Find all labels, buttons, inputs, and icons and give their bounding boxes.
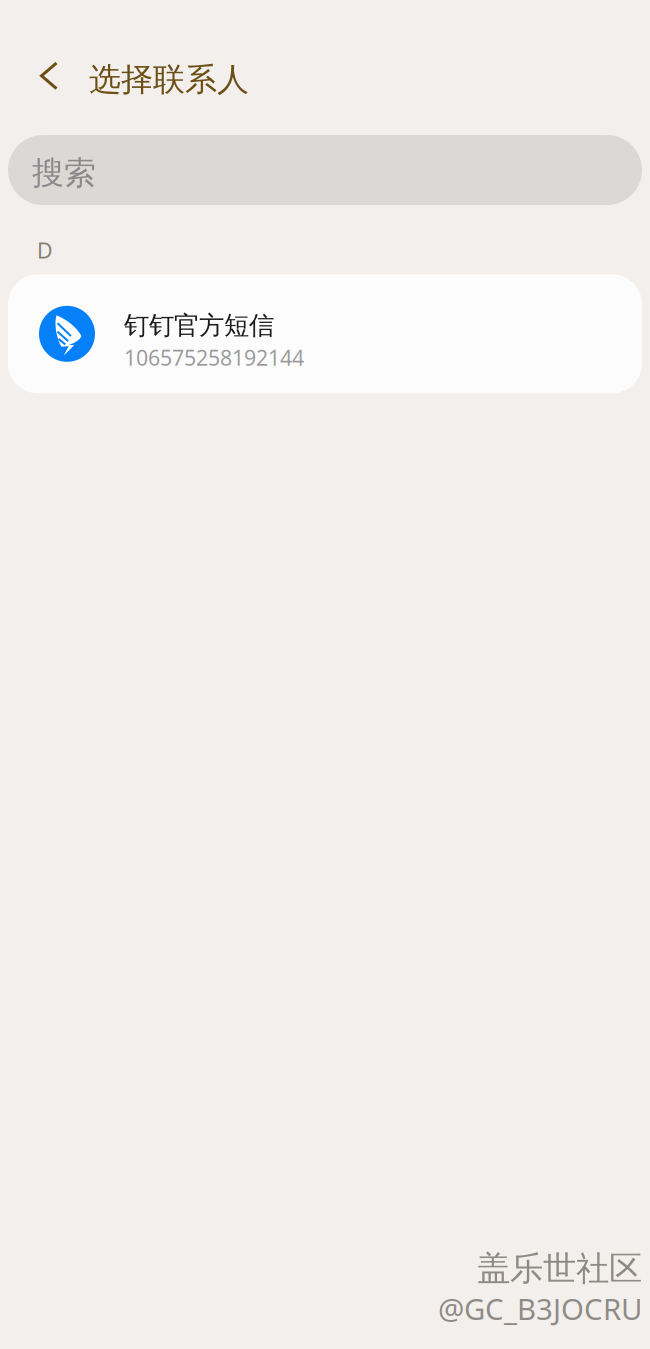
staticText: 搜索 bbox=[32, 153, 96, 193]
button[interactable]: 搜索 bbox=[8, 135, 642, 205]
staticText: 选择联系人 bbox=[89, 60, 249, 99]
staticText: D bbox=[37, 236, 53, 264]
staticText: 钉钉官方短信 bbox=[124, 310, 274, 341]
staticText: @GC_B3JOCRU bbox=[438, 1289, 642, 1328]
button[interactable]: 返回 bbox=[0, 0, 74, 105]
staticText: 盖乐世社区 bbox=[477, 1248, 642, 1289]
staticText: 106575258192144 bbox=[124, 343, 304, 371]
button[interactable]: 钉钉官方短信 bbox=[8, 274, 642, 393]
